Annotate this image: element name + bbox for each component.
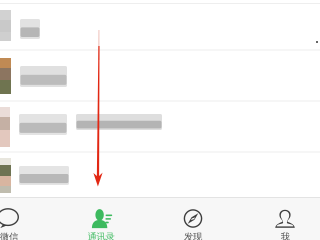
staticText: 通讯录 xyxy=(87,231,114,240)
staticText: 我 xyxy=(280,231,289,240)
button[interactable]: 我 xyxy=(239,197,320,240)
button[interactable]: 微信 xyxy=(0,197,55,240)
button[interactable]: 通讯录 xyxy=(55,197,147,240)
staticText: 发现 xyxy=(184,231,202,240)
button[interactable]: 发现 xyxy=(147,197,239,240)
staticText: 微信 xyxy=(0,231,18,240)
